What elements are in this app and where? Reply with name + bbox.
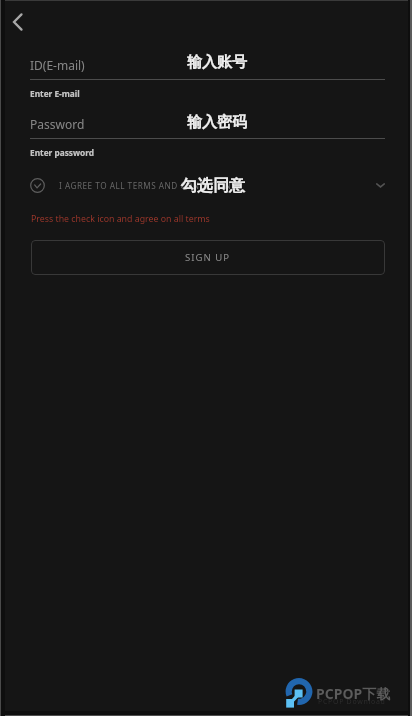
staticText: ID(E-mail) — [30, 57, 85, 73]
button[interactable]: Back — [2, 6, 34, 38]
staticText: 输入账号 — [187, 53, 247, 72]
staticText: Password — [30, 116, 85, 132]
staticText: Enter E-mail — [30, 88, 80, 99]
staticText: SIGN UP — [185, 251, 231, 264]
staticText: Enter password — [30, 147, 95, 158]
staticText: 输入密码 — [187, 113, 247, 132]
staticText: Press the check icon and agree on all te… — [31, 213, 210, 225]
staticText: 勾选同意 — [181, 176, 245, 196]
staticText: I AGREE TO ALL TERMS AND CONDITIONS — [59, 180, 237, 191]
staticText: PCPOP下载 — [316, 684, 391, 703]
staticText: PCPOP Download — [318, 697, 386, 707]
button[interactable]: SIGN UP — [31, 240, 385, 275]
button[interactable]: I AGREE TO ALL TERMS AND CONDITIONS — [30, 172, 385, 199]
